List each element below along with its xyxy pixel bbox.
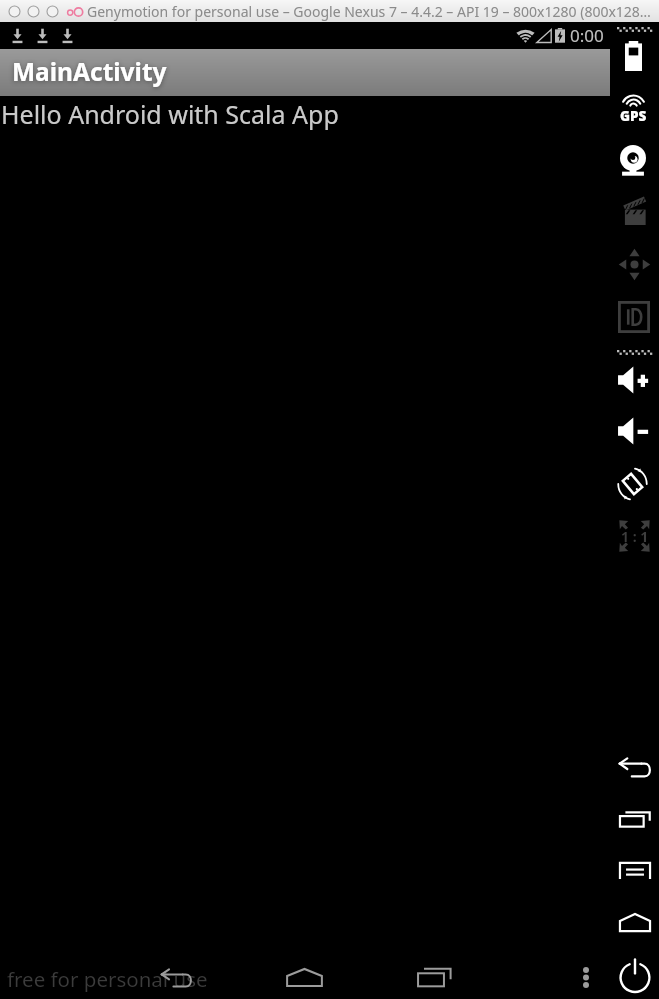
button[interactable]: Window control (27, 5, 40, 18)
button[interactable]: Window control (46, 5, 59, 18)
button[interactable]: Menu (614, 857, 656, 885)
button[interactable]: Rotate (612, 462, 653, 506)
button[interactable]: More options (562, 956, 610, 999)
staticText: 0:00 (570, 24, 604, 47)
button[interactable]: Recents (614, 806, 656, 833)
staticText: free for personal use (7, 965, 208, 993)
button[interactable]: Volume down (611, 412, 655, 450)
button[interactable]: Recents (410, 956, 458, 999)
button[interactable]: Back (614, 753, 656, 782)
button[interactable]: Camera (615, 140, 651, 181)
button[interactable]: Power (615, 953, 655, 998)
button[interactable]: GPS (611, 89, 656, 125)
button[interactable]: Identifiers (613, 296, 655, 338)
staticText: MainActivity (12, 55, 167, 88)
staticText: 1 : 1 (621, 527, 649, 546)
button[interactable]: D-pad (612, 244, 657, 285)
button[interactable]: Back (152, 956, 200, 999)
staticText: GPS (620, 107, 647, 125)
button[interactable]: Home (614, 908, 656, 937)
staticText: Genymotion for personal use – Google Nex… (87, 2, 651, 21)
button[interactable]: Volume up (611, 361, 655, 399)
button[interactable]: Home (280, 956, 328, 999)
staticText: Hello Android with Scala App (1, 97, 339, 131)
button[interactable]: Video recording (616, 191, 654, 230)
button[interactable]: Window control (8, 5, 21, 18)
button[interactable]: Battery (620, 36, 647, 76)
button[interactable]: Scale one to one (612, 515, 657, 557)
button[interactable]: MainActivity (0, 49, 610, 96)
